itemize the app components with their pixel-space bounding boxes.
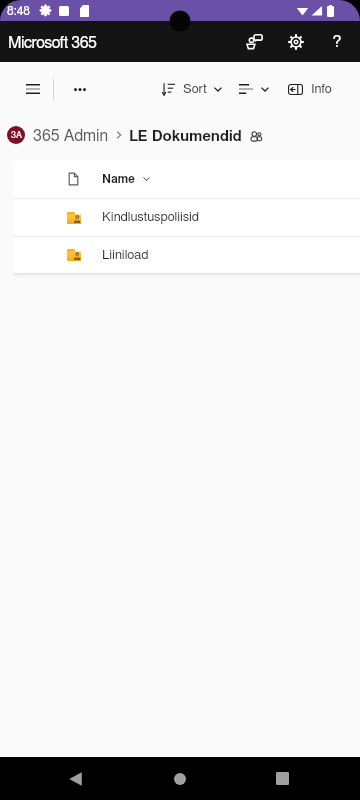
staticText: Name	[102, 173, 136, 185]
button[interactable]: Name	[13, 160, 360, 198]
staticText: Microsoft 365	[8, 35, 97, 51]
button[interactable]: Account	[7, 126, 25, 144]
staticText: 3A	[11, 131, 22, 140]
staticText: ?	[332, 33, 342, 50]
staticText: 8:48	[7, 5, 31, 17]
button[interactable]: Recent apps	[258, 757, 306, 800]
staticText: Kindlustuspoliisid	[102, 211, 200, 224]
button[interactable]: Info	[286, 67, 334, 111]
button[interactable]: Help	[316, 21, 357, 62]
staticText: Info	[311, 83, 332, 96]
button[interactable]: Layout options	[237, 67, 271, 111]
button[interactable]: Sort	[160, 67, 224, 111]
button[interactable]: LE Dokumendid	[129, 129, 242, 144]
button[interactable]: View options	[13, 69, 53, 109]
button[interactable]: Liiniload	[13, 237, 360, 273]
staticText: Liiniload	[102, 249, 149, 262]
button[interactable]: Kindlustuspoliisid	[13, 199, 360, 236]
button[interactable]: Settings	[275, 21, 316, 62]
button[interactable]: Back	[51, 757, 99, 800]
button[interactable]: More options	[60, 69, 100, 109]
staticText: Sort	[183, 83, 207, 96]
button[interactable]: Chat	[234, 21, 275, 62]
button[interactable]: Home	[156, 757, 204, 800]
button[interactable]: 365 Admin	[33, 128, 109, 144]
